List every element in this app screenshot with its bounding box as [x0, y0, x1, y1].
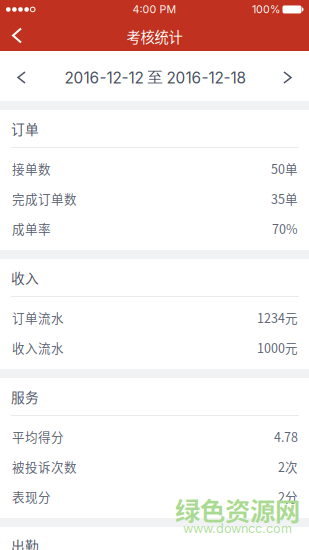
staticText: 出勤 — [11, 536, 39, 550]
staticText: 收入 — [11, 268, 39, 287]
staticText: 4:00 PM — [132, 3, 176, 16]
staticText: 完成订单数 — [12, 189, 77, 207]
staticText: 表现分 — [12, 487, 51, 505]
staticText: 100% — [252, 3, 280, 16]
staticText: 考核统计 — [126, 26, 182, 47]
staticText: 订单流水 — [12, 308, 64, 326]
button[interactable]: 被投诉次数 — [0, 451, 309, 481]
staticText: 被投诉次数 — [12, 457, 77, 475]
button[interactable]: 订单流水 — [0, 302, 309, 332]
button[interactable]: 表现分 — [0, 481, 309, 511]
button[interactable]: 平均得分 — [0, 421, 309, 451]
button[interactable]: 完成订单数 — [0, 183, 309, 213]
staticText: 平均得分 — [12, 427, 64, 445]
staticText: 接单数 — [12, 159, 51, 177]
staticText: 成单率 — [12, 219, 51, 237]
staticText: 1000元 — [257, 338, 298, 356]
staticText: www.downcc.com — [183, 521, 292, 536]
staticText: 订单 — [11, 119, 39, 138]
button[interactable]: Back — [0, 20, 37, 50]
staticText: 50单 — [271, 159, 298, 177]
button[interactable]: 收入流水 — [0, 332, 309, 362]
staticText: 35单 — [271, 189, 298, 207]
staticText: 绿色资源网 — [175, 491, 300, 528]
button[interactable]: 接单数 — [0, 153, 309, 183]
button[interactable]: Next period — [266, 65, 309, 90]
button[interactable]: 成单率 — [0, 213, 309, 243]
staticText: 1234元 — [257, 308, 298, 326]
staticText: 2分 — [278, 487, 298, 505]
staticText: 2次 — [278, 457, 298, 475]
staticText: 收入流水 — [12, 338, 64, 356]
staticText: 2016-12-12 至 2016-12-18 — [64, 68, 245, 87]
button[interactable]: Previous period — [0, 65, 44, 90]
staticText: 4.78 — [274, 427, 298, 445]
staticText: 70% — [272, 219, 298, 237]
staticText: 服务 — [11, 387, 39, 406]
